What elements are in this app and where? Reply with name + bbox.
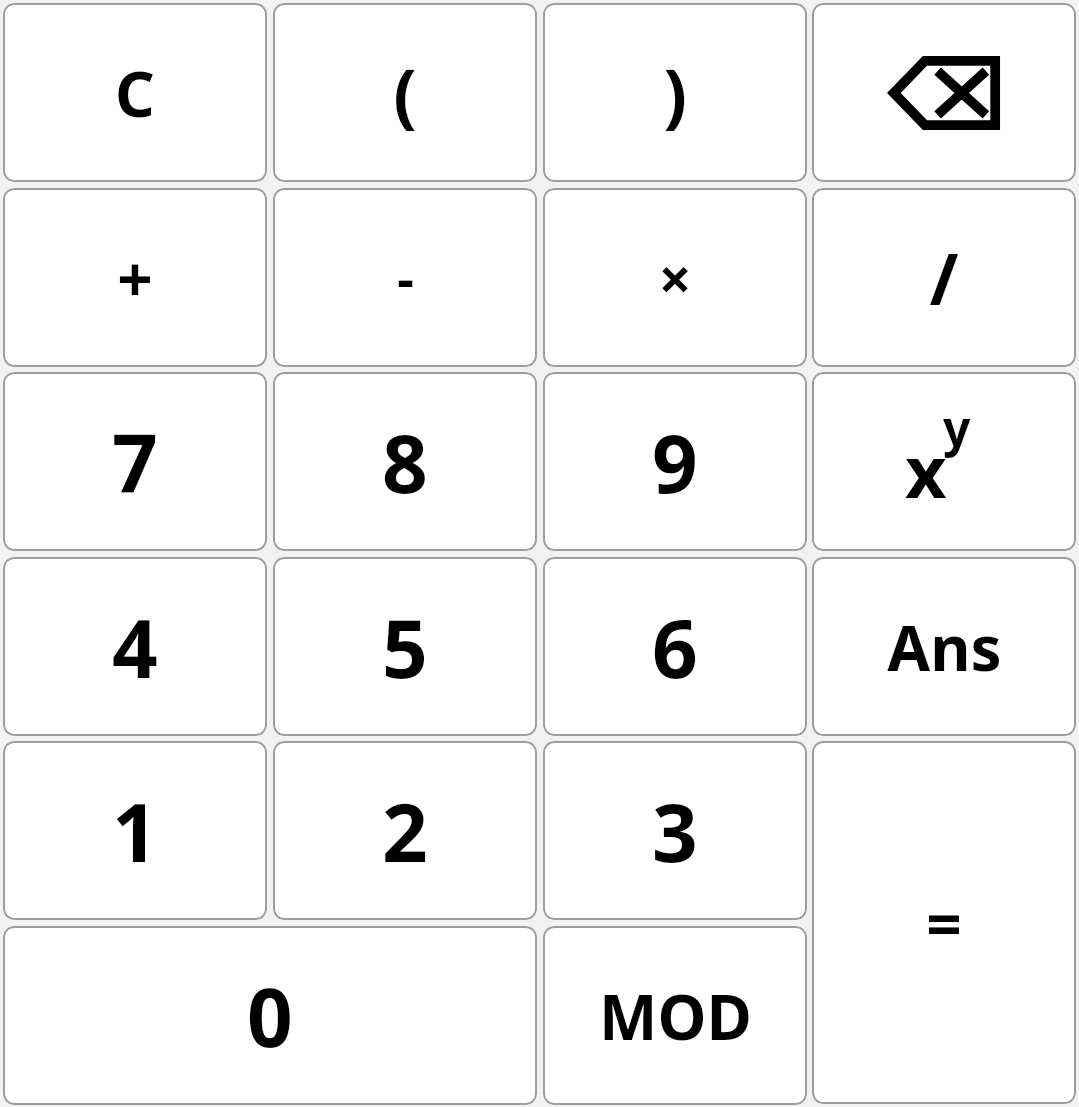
staticText: 6 (652, 592, 698, 701)
button[interactable]: + (3, 188, 267, 367)
button[interactable]: Backspace (812, 3, 1076, 182)
staticText: ) (663, 45, 687, 140)
staticText: 1 (112, 776, 158, 885)
button[interactable]: x (812, 372, 1076, 551)
staticText: / (929, 230, 959, 325)
staticText: 7 (112, 407, 158, 516)
button[interactable]: ) (543, 3, 807, 182)
staticText: Ans (887, 605, 1002, 689)
staticText: = (926, 881, 962, 965)
button[interactable]: 4 (3, 557, 267, 736)
staticText: 9 (652, 407, 698, 516)
staticText: MOD (599, 974, 752, 1058)
staticText: + (117, 236, 153, 320)
staticText: 0 (247, 961, 293, 1070)
button[interactable]: 2 (273, 741, 537, 920)
button[interactable]: MOD (543, 926, 807, 1105)
button[interactable]: - (273, 188, 537, 367)
staticText: - (397, 242, 414, 313)
button[interactable]: 6 (543, 557, 807, 736)
button[interactable]: 7 (3, 372, 267, 551)
staticText: 3 (652, 776, 698, 885)
staticText: 4 (112, 592, 158, 701)
button[interactable]: 3 (543, 741, 807, 920)
button[interactable]: 0 (3, 926, 537, 1105)
staticText: × (658, 238, 692, 317)
staticText: y (943, 395, 971, 460)
button[interactable]: × (543, 188, 807, 367)
staticText: 2 (382, 776, 428, 885)
staticText: x (905, 421, 947, 519)
button[interactable]: / (812, 188, 1076, 367)
staticText: 5 (382, 592, 428, 701)
button[interactable]: C (3, 3, 267, 182)
staticText: ( (393, 45, 417, 140)
button[interactable]: ( (273, 3, 537, 182)
staticText: C (115, 51, 155, 135)
button[interactable]: 9 (543, 372, 807, 551)
staticText: 8 (382, 407, 428, 516)
button[interactable]: 5 (273, 557, 537, 736)
button[interactable]: 1 (3, 741, 267, 920)
button[interactable]: Ans (812, 557, 1076, 736)
button[interactable]: = (812, 741, 1076, 1104)
button[interactable]: 8 (273, 372, 537, 551)
